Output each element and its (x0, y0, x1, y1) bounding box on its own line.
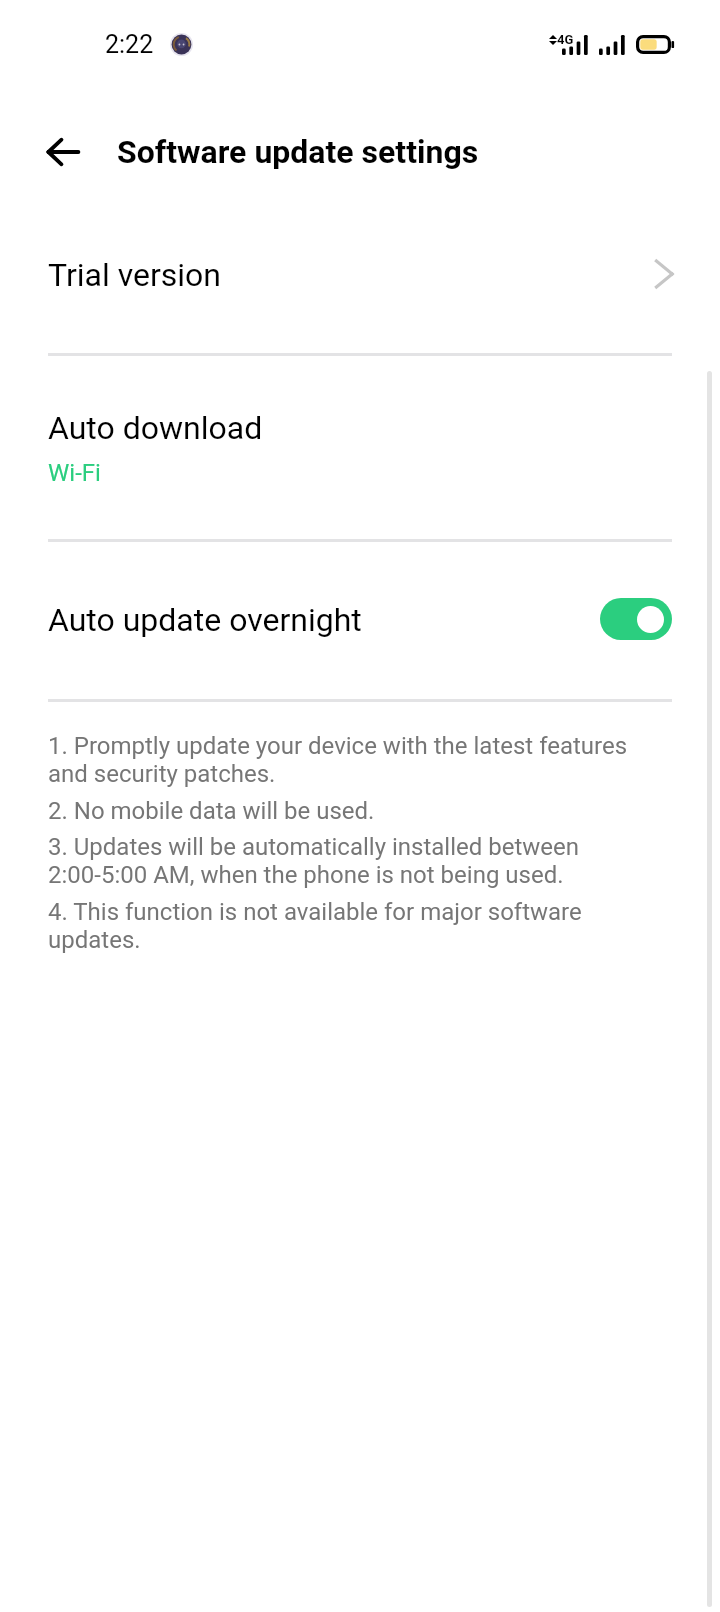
staticText: Software update settings (117, 133, 479, 171)
staticText: Auto download (48, 409, 263, 447)
staticText: 4. This function is not available for ma… (48, 898, 582, 926)
staticText: 2:22 (105, 30, 154, 59)
button[interactable]: Auto update overnight, on (600, 598, 672, 640)
staticText: 4G (557, 32, 574, 47)
button[interactable]: Back (21, 110, 105, 194)
staticText: updates. (48, 926, 141, 954)
button[interactable]: Trial version (0, 226, 720, 353)
staticText: Wi-Fi (48, 459, 101, 487)
staticText: 2:00-5:00 AM, when the phone is not bein… (48, 861, 564, 889)
staticText: 3. Updates will be automatically install… (48, 833, 580, 861)
button[interactable]: Auto download (0, 356, 720, 539)
staticText: Auto update overnight (48, 601, 362, 639)
staticText: Trial version (48, 256, 221, 294)
button[interactable]: Auto update overnight (0, 542, 720, 699)
staticText: 2. No mobile data will be used. (48, 797, 375, 825)
staticText: 1. Promptly update your device with the … (48, 732, 628, 760)
staticText: and security patches. (48, 760, 276, 788)
